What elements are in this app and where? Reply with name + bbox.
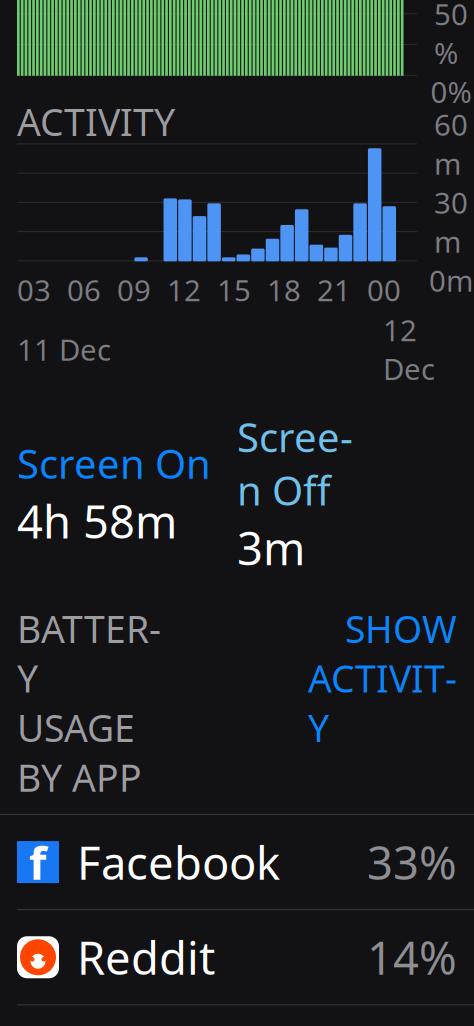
staticText: 11 Dec <box>17 330 111 369</box>
staticText: 14% <box>367 927 457 987</box>
staticText: ACTIVITY <box>308 653 457 752</box>
staticText: 33% <box>367 832 457 892</box>
staticText: Reddit <box>77 927 215 987</box>
button[interactable]: Reddit <box>0 910 474 1004</box>
staticText: 15 <box>217 270 251 309</box>
staticText: SHOW <box>345 604 457 653</box>
staticText: 60m <box>434 105 468 183</box>
staticText: ACTIVITY <box>17 97 175 146</box>
staticText: USAGE BY APP <box>17 703 142 802</box>
staticText: Facebook <box>77 832 280 892</box>
staticText: 06 <box>67 270 101 309</box>
staticText: 0m <box>429 261 473 300</box>
staticText: 3m <box>237 517 305 578</box>
staticText: 21 <box>317 270 351 309</box>
staticText: 50% <box>434 0 468 72</box>
staticText: 4h 58m <box>17 491 177 551</box>
staticText: 12 Dec <box>383 310 435 388</box>
button[interactable]: SHOW <box>307 604 457 752</box>
staticText: 03 <box>17 270 51 309</box>
button[interactable]: f <box>0 815 474 909</box>
staticText: 09 <box>117 270 151 309</box>
staticText: 30m <box>434 183 468 261</box>
staticText: Screen On <box>17 437 211 490</box>
staticText: 00 <box>367 270 401 309</box>
staticText: Screen Off <box>237 410 353 516</box>
staticText: 12 <box>167 270 201 309</box>
staticText: BATTERY <box>17 604 161 703</box>
staticText: f <box>29 832 47 892</box>
staticText: 18 <box>267 270 301 309</box>
staticText: 0% <box>430 72 471 111</box>
